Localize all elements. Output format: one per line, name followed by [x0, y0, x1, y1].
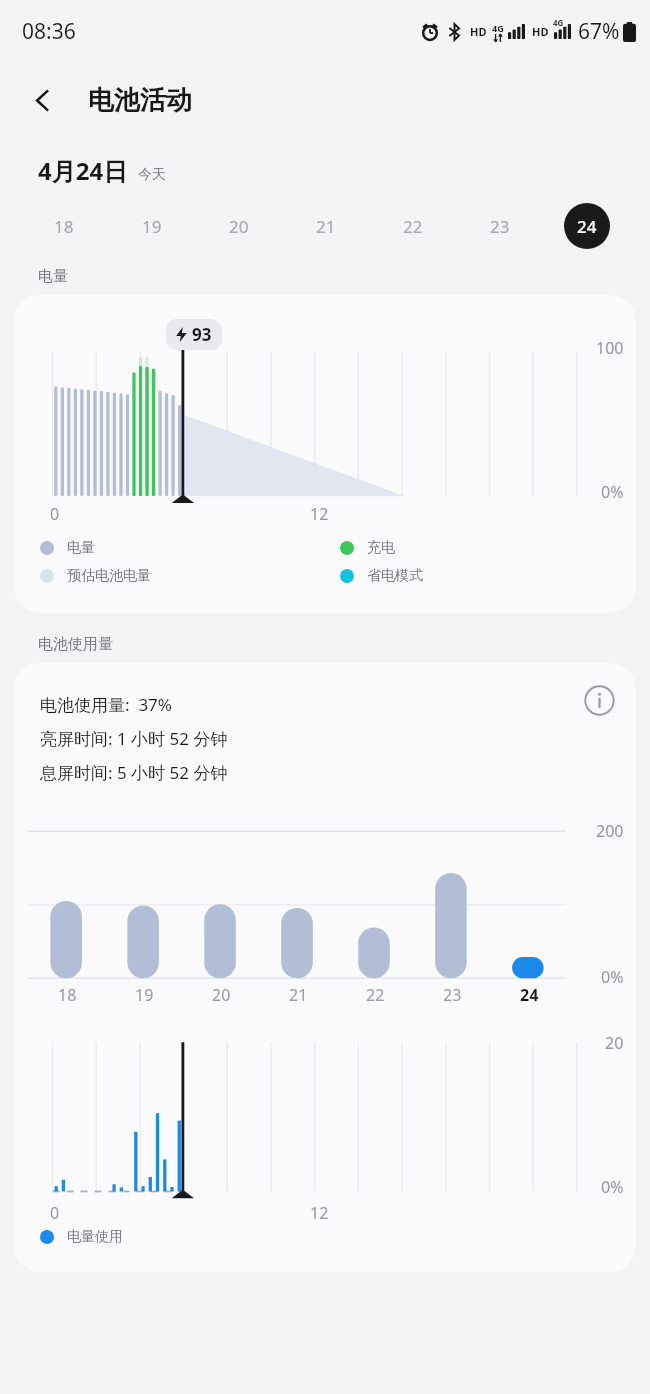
staticText: 18 [58, 984, 77, 1006]
button[interactable]: 21 [282, 201, 369, 251]
staticText: 67% [578, 17, 620, 46]
button[interactable]: 22 [369, 201, 456, 251]
staticText: 4月24日 [38, 154, 128, 187]
staticText: 电池使用量: 37% [40, 693, 172, 716]
staticText: 电池活动 [88, 84, 192, 117]
staticText: 22 [403, 215, 423, 238]
staticText: 充电 [367, 539, 395, 557]
button[interactable]: 20 [195, 201, 282, 251]
staticText: 20 [229, 215, 249, 238]
staticText: 20 [605, 1032, 624, 1054]
staticText: 亮屏时间: 1 小时 52 分钟 [40, 727, 228, 750]
staticText: HD [470, 24, 487, 39]
button[interactable]: Back [18, 75, 68, 125]
staticText: 24 [577, 215, 597, 238]
staticText: 0 [50, 1202, 60, 1224]
staticText: 电量使用 [67, 1228, 123, 1246]
button[interactable]: 19 [108, 201, 195, 251]
staticText: 息屏时间: 5 小时 52 分钟 [40, 761, 228, 784]
button[interactable]: 100 [14, 295, 636, 613]
staticText: 0 [50, 503, 60, 525]
staticText: 省电模式 [367, 567, 423, 585]
staticText: 0% [601, 966, 624, 988]
button[interactable]: 电池使用量: 37% [14, 663, 636, 1272]
staticText: 100 [596, 337, 624, 359]
button[interactable]: 18 [20, 201, 108, 251]
staticText: 电量 [38, 267, 68, 286]
staticText: 20 [212, 984, 231, 1006]
staticText: 93 [192, 323, 212, 346]
staticText: 08:36 [22, 17, 76, 46]
button[interactable]: 23 [456, 201, 543, 251]
staticText: 200 [596, 820, 624, 842]
staticText: 0% [601, 1176, 624, 1198]
staticText: 预估电池电量 [67, 567, 151, 585]
staticText: 21 [316, 215, 336, 238]
staticText: 19 [142, 215, 162, 238]
staticText: 24 [520, 984, 539, 1006]
staticText: 4G [553, 17, 564, 28]
staticText: 电池使用量 [38, 635, 113, 654]
staticText: 19 [135, 984, 154, 1006]
staticText: 12 [310, 1202, 329, 1224]
staticText: 4G [492, 22, 504, 34]
staticText: 21 [289, 984, 308, 1006]
staticText: 0% [601, 481, 624, 503]
staticText: 22 [366, 984, 385, 1006]
staticText: 电量 [67, 539, 95, 557]
staticText: 12 [310, 503, 329, 525]
staticText: 18 [54, 215, 74, 238]
button[interactable]: Info [576, 677, 622, 723]
staticText: 23 [490, 215, 510, 238]
staticText: 今天 [138, 166, 166, 184]
staticText: HD [532, 24, 549, 39]
staticText: 23 [443, 984, 462, 1006]
button[interactable]: 24 [543, 201, 630, 251]
